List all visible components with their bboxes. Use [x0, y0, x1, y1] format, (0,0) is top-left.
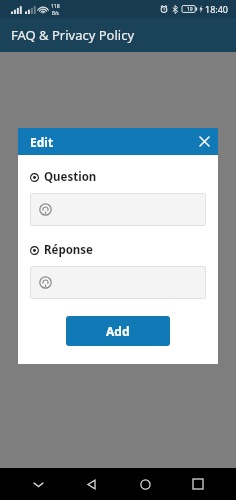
staticText: B/s [52, 10, 59, 16]
staticText: FAQ & Privacy Policy [11, 26, 135, 44]
staticText: Comment commander? [11, 155, 213, 170]
button[interactable]: Hide keyboard [22, 468, 54, 500]
staticText: Question [44, 169, 97, 185]
button[interactable]: Quels sont les frais? [0, 176, 236, 202]
staticText: 118 [51, 3, 60, 10]
button[interactable]: Home [129, 468, 161, 500]
staticText: Edit [30, 134, 54, 150]
button[interactable]: Hide keyboard [22, 468, 54, 500]
staticText: 118 [51, 3, 60, 10]
staticText: Quels sont les frais? [11, 182, 213, 197]
staticText: Réponse [44, 242, 93, 258]
button[interactable]: Qu'est ce que BelgoDelivery? [0, 122, 236, 148]
staticText: 19 [187, 6, 193, 13]
staticText: Qu'est ce que BelgoDelivery? [11, 128, 213, 143]
button[interactable] [30, 193, 206, 226]
staticText: FAQ & Privacy Policy [11, 26, 135, 44]
staticText: 18:40 [205, 3, 229, 15]
button[interactable]: Back [75, 468, 107, 500]
staticText: B/s [52, 10, 59, 16]
button[interactable]: Back [75, 468, 107, 500]
staticText: Add [106, 323, 130, 339]
button[interactable] [30, 266, 206, 299]
staticText: 18:40 [205, 3, 229, 15]
button[interactable]: Close [191, 128, 218, 155]
button[interactable]: Recents [182, 468, 214, 500]
button[interactable]: Home [129, 468, 161, 500]
button[interactable]: Recents [182, 468, 214, 500]
staticText: 19 [187, 6, 193, 13]
button[interactable]: Comment commander? [0, 149, 236, 175]
button[interactable]: Add [66, 316, 170, 346]
